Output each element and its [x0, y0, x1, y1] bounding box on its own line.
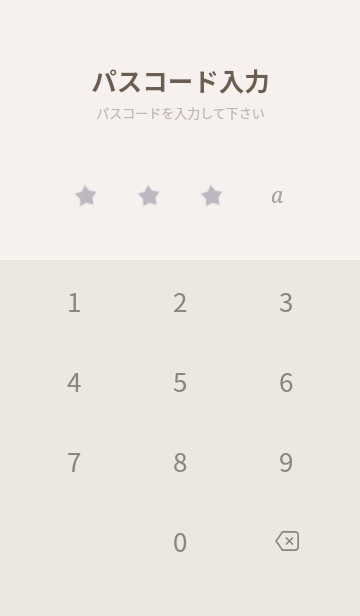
button[interactable]: 1 [21, 261, 127, 341]
button[interactable]: 0 [127, 501, 233, 581]
staticText: 0 [173, 522, 188, 560]
staticText: 2 [173, 282, 188, 320]
staticText: 3 [279, 282, 294, 320]
staticText: 4 [67, 362, 82, 400]
staticText: 6 [279, 362, 294, 400]
staticText: 8 [173, 442, 188, 480]
button[interactable]: 5 [127, 341, 233, 421]
button[interactable]: 3 [233, 261, 339, 341]
button[interactable]: Delete [233, 501, 339, 581]
button[interactable]: 6 [233, 341, 339, 421]
staticText: パスコードを入力して下さい [96, 103, 265, 122]
staticText: 9 [279, 442, 294, 480]
staticText: 7 [67, 442, 82, 480]
button[interactable]: 2 [127, 261, 233, 341]
staticText: a [271, 181, 284, 203]
staticText: 1 [67, 282, 82, 320]
button[interactable]: 7 [21, 421, 127, 501]
button[interactable]: 8 [127, 421, 233, 501]
button[interactable]: 9 [233, 421, 339, 501]
staticText: 5 [173, 362, 188, 400]
staticText: パスコード入力 [91, 61, 270, 98]
button[interactable]: 4 [21, 341, 127, 421]
